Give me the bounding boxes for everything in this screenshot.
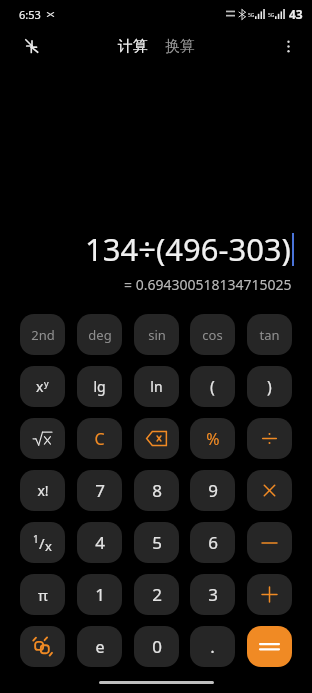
button[interactable]: 3	[190, 574, 235, 615]
button[interactable]: 8	[134, 470, 179, 511]
button[interactable]: Plus	[247, 574, 292, 615]
staticText: 3	[208, 583, 218, 606]
button[interactable]: deg	[77, 314, 122, 355]
staticText: cos	[202, 326, 223, 344]
staticText: deg	[88, 326, 112, 344]
staticText: /	[39, 533, 45, 553]
button[interactable]: %	[190, 418, 235, 459]
button[interactable]: Equals	[247, 626, 292, 667]
button[interactable]: Backspace	[134, 418, 179, 459]
button[interactable]: 2	[134, 574, 179, 615]
staticText: 134÷(496-303)	[85, 228, 291, 270]
staticText: (	[210, 376, 215, 398]
staticText: 换算	[165, 37, 195, 56]
button[interactable]: )	[247, 366, 292, 407]
staticText: 计算	[118, 37, 148, 56]
staticText: = 0.694300518134715025	[124, 275, 292, 294]
button[interactable]: x!	[20, 470, 65, 511]
staticText: 6	[208, 531, 218, 554]
staticText: x!	[37, 481, 49, 500]
staticText: tan	[259, 326, 280, 344]
staticText: 4	[95, 531, 105, 554]
button[interactable]: sin	[134, 314, 179, 355]
staticText: lg	[93, 377, 106, 396]
button[interactable]: 1	[77, 574, 122, 615]
button[interactable]: π	[20, 574, 65, 615]
button[interactable]: Collapse	[20, 34, 44, 58]
staticText: 2nd	[31, 326, 55, 344]
button[interactable]: One over x	[20, 522, 65, 563]
staticText: x	[45, 537, 52, 555]
button[interactable]: Multiply	[247, 470, 292, 511]
button[interactable]: lg	[77, 366, 122, 407]
button[interactable]: More options	[277, 35, 299, 57]
staticText: 9	[208, 479, 218, 502]
staticText: %	[206, 428, 220, 450]
staticText: 2	[152, 583, 162, 606]
staticText: x	[36, 377, 44, 396]
staticText: 0	[152, 635, 162, 658]
button[interactable]: C	[77, 418, 122, 459]
button[interactable]: .	[190, 626, 235, 667]
button[interactable]: tan	[247, 314, 292, 355]
staticText: 43	[289, 6, 303, 22]
staticText: y	[44, 377, 49, 389]
staticText: 5G	[248, 12, 255, 19]
button[interactable]: 9	[190, 470, 235, 511]
button[interactable]: 6	[190, 522, 235, 563]
button[interactable]: 5	[134, 522, 179, 563]
button[interactable]: (	[190, 366, 235, 407]
staticText: sin	[148, 326, 166, 344]
button[interactable]: 换算	[159, 32, 201, 61]
button[interactable]: Square root	[20, 418, 65, 459]
staticText: C	[94, 428, 105, 450]
button[interactable]: ln	[134, 366, 179, 407]
button[interactable]: e	[77, 626, 122, 667]
staticText: 5G	[268, 12, 275, 19]
button[interactable]: Minus	[247, 522, 292, 563]
staticText: 1	[95, 583, 105, 606]
staticText: )	[267, 376, 272, 398]
staticText: 6:53	[19, 7, 41, 22]
button[interactable]: 7	[77, 470, 122, 511]
staticText: 7	[95, 479, 105, 502]
button[interactable]: 计算	[112, 32, 154, 61]
button[interactable]: Smart calculation	[20, 626, 65, 667]
staticText: .	[210, 635, 215, 658]
button[interactable]: 2nd	[20, 314, 65, 355]
button[interactable]: 0	[134, 626, 179, 667]
staticText: 8	[152, 479, 162, 502]
staticText: 1	[33, 532, 39, 546]
button[interactable]: Divide	[247, 418, 292, 459]
staticText: e	[95, 636, 105, 658]
staticText: π	[38, 585, 48, 605]
staticText: ln	[150, 377, 163, 396]
button[interactable]: 4	[77, 522, 122, 563]
staticText: 5	[152, 531, 162, 554]
button[interactable]: x to the power of y	[20, 366, 65, 407]
button[interactable]: cos	[190, 314, 235, 355]
